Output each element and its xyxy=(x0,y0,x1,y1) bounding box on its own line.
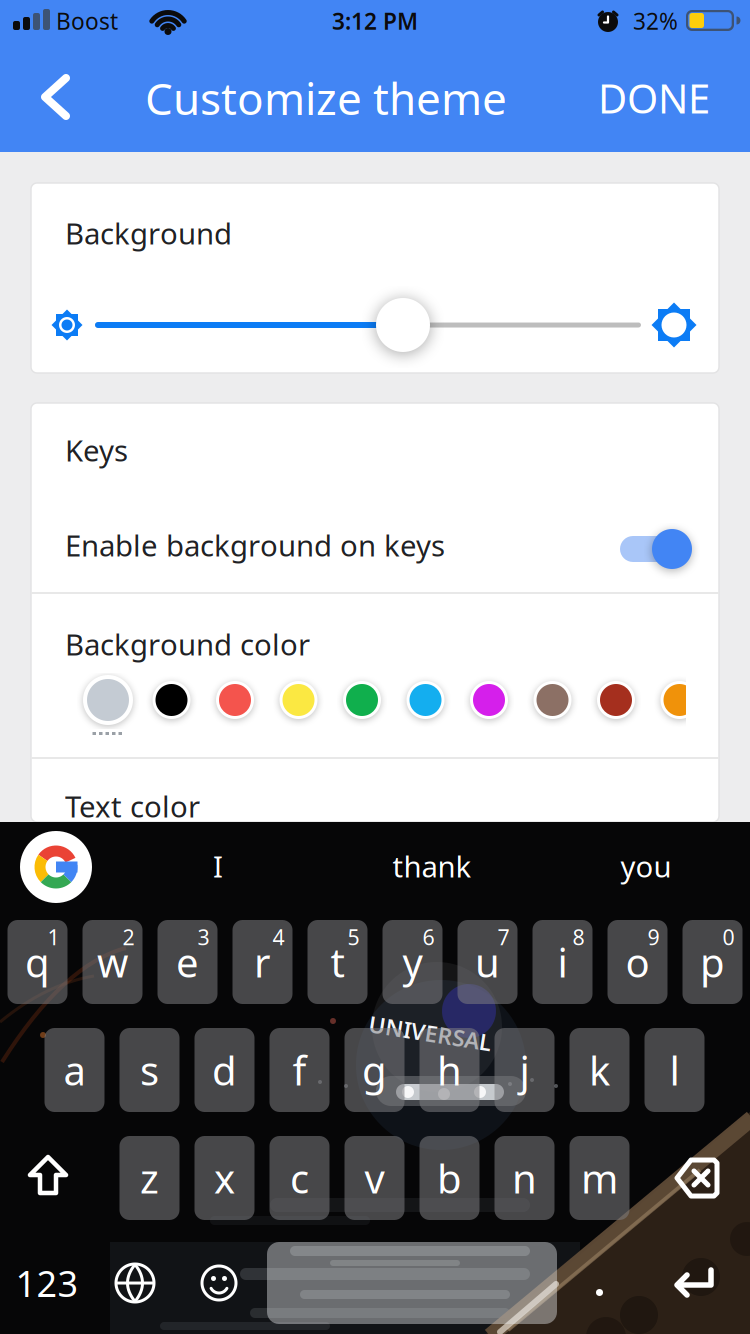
button[interactable]: m xyxy=(569,1136,629,1220)
staticText: 5 xyxy=(347,923,359,951)
button[interactable]: Background color option 6 xyxy=(400,675,450,725)
button[interactable]: k xyxy=(569,1028,629,1112)
button[interactable]: Back xyxy=(28,65,88,129)
button[interactable]: Enable background on keys xyxy=(31,513,719,593)
button[interactable]: x xyxy=(194,1136,254,1220)
staticText: l xyxy=(669,1043,679,1096)
button[interactable]: you xyxy=(566,836,726,896)
staticText: 1 xyxy=(47,923,59,951)
button[interactable]: Google xyxy=(20,831,92,903)
button[interactable]: o xyxy=(607,920,667,1004)
button[interactable]: Background color option 2 xyxy=(146,675,196,725)
button[interactable]: Background color option 3 xyxy=(210,675,260,725)
button[interactable]: Background color option 4 xyxy=(273,675,323,725)
staticText: 3 xyxy=(197,923,209,951)
staticText: m xyxy=(581,1151,618,1204)
staticText: 32% xyxy=(633,6,678,36)
button[interactable]: l xyxy=(644,1028,704,1112)
staticText: Boost xyxy=(56,6,118,36)
staticText: I xyxy=(213,846,223,885)
staticText: Keys xyxy=(65,430,128,469)
button[interactable]: a xyxy=(44,1028,104,1112)
staticText: w xyxy=(97,935,128,988)
staticText: DONE xyxy=(598,71,710,124)
button[interactable]: f xyxy=(269,1028,329,1112)
button[interactable]: b xyxy=(419,1136,479,1220)
button[interactable]: Return xyxy=(666,1259,722,1307)
button[interactable]: Background color option 7 xyxy=(464,675,514,725)
staticText: 123 xyxy=(15,1259,78,1307)
button[interactable]: g xyxy=(344,1028,404,1112)
button[interactable]: y xyxy=(382,920,442,1004)
staticText: 7 xyxy=(497,923,509,951)
staticText: x xyxy=(214,1151,235,1204)
staticText: you xyxy=(620,846,671,885)
staticText: v xyxy=(364,1151,384,1204)
staticText: 8 xyxy=(572,923,584,951)
button[interactable]: p xyxy=(682,920,742,1004)
button[interactable]: e xyxy=(157,920,217,1004)
button[interactable]: Background color option 5 xyxy=(337,675,387,725)
button[interactable]: i xyxy=(532,920,592,1004)
staticText: t xyxy=(330,935,344,988)
staticText: Background color xyxy=(65,624,310,663)
button[interactable]: c xyxy=(269,1136,329,1220)
staticText: 4 xyxy=(272,923,284,951)
button[interactable]: j xyxy=(494,1028,554,1112)
button[interactable]: u xyxy=(457,920,517,1004)
staticText: f xyxy=(292,1043,306,1096)
staticText: g xyxy=(362,1043,387,1096)
staticText: i xyxy=(557,935,567,988)
staticText: 9 xyxy=(647,923,659,951)
staticText: s xyxy=(140,1043,159,1096)
staticText: d xyxy=(212,1043,237,1096)
staticText: 2 xyxy=(122,923,134,951)
staticText: h xyxy=(437,1043,462,1096)
button[interactable]: Period xyxy=(596,1289,603,1296)
staticText: q xyxy=(25,935,50,988)
button[interactable]: Next keyboard xyxy=(113,1261,157,1305)
staticText: a xyxy=(63,1043,85,1096)
button[interactable]: Shift xyxy=(16,1144,80,1208)
staticText: Enable background on keys xyxy=(65,525,445,564)
staticText: Customize theme xyxy=(145,69,507,127)
button[interactable]: v xyxy=(344,1136,404,1220)
staticText: r xyxy=(254,935,271,988)
button[interactable]: I xyxy=(138,836,298,896)
staticText: 6 xyxy=(422,923,434,951)
button[interactable]: thank xyxy=(352,836,512,896)
button[interactable]: n xyxy=(494,1136,554,1220)
staticText: z xyxy=(140,1151,159,1204)
button[interactable]: t xyxy=(307,920,367,1004)
button[interactable]: z xyxy=(119,1136,179,1220)
button[interactable]: q xyxy=(7,920,67,1004)
button[interactable]: Background color option 10 xyxy=(654,675,704,725)
button[interactable]: DONE xyxy=(560,72,710,124)
button[interactable]: s xyxy=(119,1028,179,1112)
button[interactable]: 123 xyxy=(2,1253,92,1313)
staticText: UNIVERSAL xyxy=(368,1018,492,1048)
staticText: y xyxy=(402,935,422,988)
button[interactable]: Emoji xyxy=(199,1263,239,1303)
button[interactable]: Delete xyxy=(668,1146,732,1210)
button[interactable]: d xyxy=(194,1028,254,1112)
button[interactable]: h xyxy=(419,1028,479,1112)
staticText: u xyxy=(475,935,500,988)
staticText: k xyxy=(589,1043,610,1096)
staticText: Text color xyxy=(65,786,200,825)
staticText: b xyxy=(437,1151,462,1204)
button[interactable]: Background color option 9 xyxy=(591,675,641,725)
button[interactable]: Space xyxy=(267,1242,557,1324)
button[interactable]: w xyxy=(82,920,142,1004)
staticText: n xyxy=(512,1151,537,1204)
staticText: c xyxy=(290,1151,309,1204)
button[interactable]: Background color option 8 xyxy=(527,675,577,725)
staticText: e xyxy=(176,935,199,988)
staticText: Background xyxy=(65,213,232,252)
button[interactable]: Background color option 1 xyxy=(83,675,133,725)
button[interactable]: r xyxy=(232,920,292,1004)
staticText: o xyxy=(625,935,649,988)
staticText: p xyxy=(700,935,725,988)
staticText: 3:12 PM xyxy=(332,6,418,36)
staticText: 0 xyxy=(722,923,734,951)
